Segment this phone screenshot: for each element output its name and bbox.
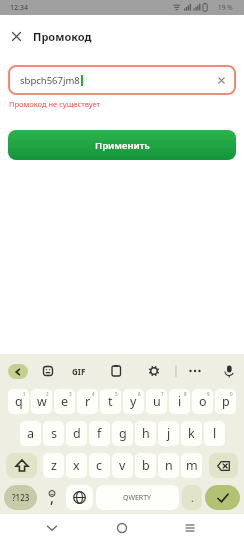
button[interactable]: j [158,421,179,446]
staticText: 12:34 [10,3,28,13]
staticText: z [51,457,57,474]
button[interactable]: Применить [8,130,236,160]
staticText: d [73,425,81,442]
staticText: h [142,425,150,442]
button[interactable]: p [215,389,236,414]
button[interactable]: f [89,421,110,446]
button[interactable]: v [112,453,133,478]
button[interactable]: o [192,389,213,414]
button[interactable]: . [182,485,202,510]
button[interactable] [6,453,37,478]
staticText: 8 [184,391,187,397]
staticText: 7 [161,391,164,397]
staticText: r [85,393,91,410]
staticText: Промокод [33,29,92,44]
button[interactable]: c [89,453,110,478]
staticText: w [37,393,47,410]
staticText: 2 [46,391,49,397]
staticText: 0 [230,391,233,397]
button[interactable]: z [43,453,64,478]
button[interactable]: y [123,389,144,414]
staticText: o [199,393,207,410]
staticText: e [61,393,69,410]
button[interactable]: l [204,421,225,446]
staticText: f [97,425,102,442]
staticText: j [167,425,171,442]
staticText: u [153,393,161,410]
button[interactable] [6,26,26,46]
staticText: l [213,425,217,442]
button[interactable]: s [43,421,64,446]
staticText: g [119,425,127,442]
staticText: 6 [138,391,141,397]
button[interactable]: sbpch567jm8 [8,65,236,95]
staticText: y [130,393,137,410]
button[interactable]: x [66,453,87,478]
button[interactable] [209,453,238,478]
button[interactable]: ?123 [4,485,37,510]
button[interactable] [40,485,63,510]
button[interactable]: r [77,389,98,414]
staticText: 9 [207,391,210,397]
button[interactable]: k [181,421,202,446]
staticText: 19 % [218,3,233,12]
staticText: sbpch567jm8 [20,74,80,87]
button[interactable] [8,364,28,379]
staticText: 5 [115,391,118,397]
button[interactable] [0,514,244,545]
staticText: c [96,457,103,474]
button[interactable]: w [31,389,52,414]
staticText: b [142,457,150,474]
staticText: m [186,457,198,474]
staticText: t [108,393,113,410]
staticText: Промокод не существует [9,99,100,109]
staticText: GIF [72,366,86,377]
staticText: a [27,425,35,442]
button[interactable]: g [112,421,133,446]
staticText: n [165,457,173,474]
button[interactable]: m [181,453,202,478]
staticText: QWERTY [123,493,152,503]
button[interactable]: i [169,389,190,414]
button[interactable]: q [8,389,29,414]
staticText: x [73,457,80,474]
staticText: v [119,457,126,474]
staticText: i [178,393,182,410]
staticText: s [51,425,57,442]
button[interactable]: u [146,389,167,414]
staticText: Применить [95,139,150,152]
button[interactable] [66,485,93,510]
staticText: q [15,393,23,410]
staticText: p [222,393,230,410]
staticText: k [188,425,195,442]
staticText: 1 [23,391,26,397]
button[interactable]: t [100,389,121,414]
button[interactable]: d [66,421,87,446]
button[interactable]: h [135,421,156,446]
button[interactable]: e [54,389,75,414]
button[interactable]: QWERTY [96,485,179,510]
staticText: 3 [69,391,72,397]
staticText: ?123 [12,492,30,503]
staticText: 4 [92,391,95,397]
staticText: . [191,491,194,505]
button[interactable]: a [20,421,41,446]
button[interactable]: b [135,453,156,478]
button[interactable] [205,485,240,510]
button[interactable]: n [158,453,179,478]
